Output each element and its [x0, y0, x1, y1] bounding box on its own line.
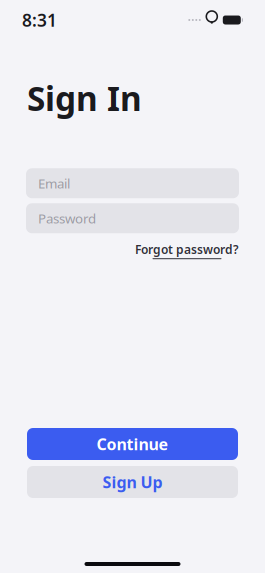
staticText: Email — [38, 174, 70, 192]
staticText: Forgot password? — [135, 241, 239, 257]
button[interactable]: Forgot password? — [135, 238, 239, 262]
staticText: Sign In — [27, 76, 142, 120]
staticText: 8:31 — [22, 8, 57, 31]
button[interactable]: Sign Up — [27, 466, 238, 498]
staticText: Sign Up — [102, 471, 162, 493]
staticText: Continue — [96, 433, 168, 455]
staticText: Password — [38, 209, 96, 227]
button[interactable]: Continue — [27, 428, 238, 460]
